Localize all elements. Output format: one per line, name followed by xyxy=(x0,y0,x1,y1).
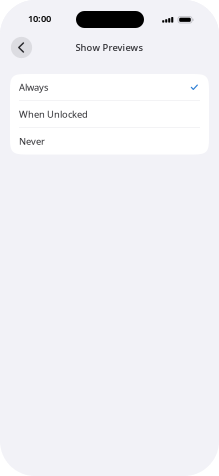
staticText: Show Previews xyxy=(75,41,143,54)
button[interactable]: When Unlocked xyxy=(10,101,209,127)
staticText: Always xyxy=(19,81,48,93)
staticText: 10:00 xyxy=(28,12,51,25)
staticText: Never xyxy=(19,135,45,147)
button[interactable]: Back xyxy=(8,34,35,61)
button[interactable]: Always xyxy=(10,74,209,100)
staticText: When Unlocked xyxy=(19,108,88,120)
button[interactable]: Never xyxy=(10,128,209,154)
